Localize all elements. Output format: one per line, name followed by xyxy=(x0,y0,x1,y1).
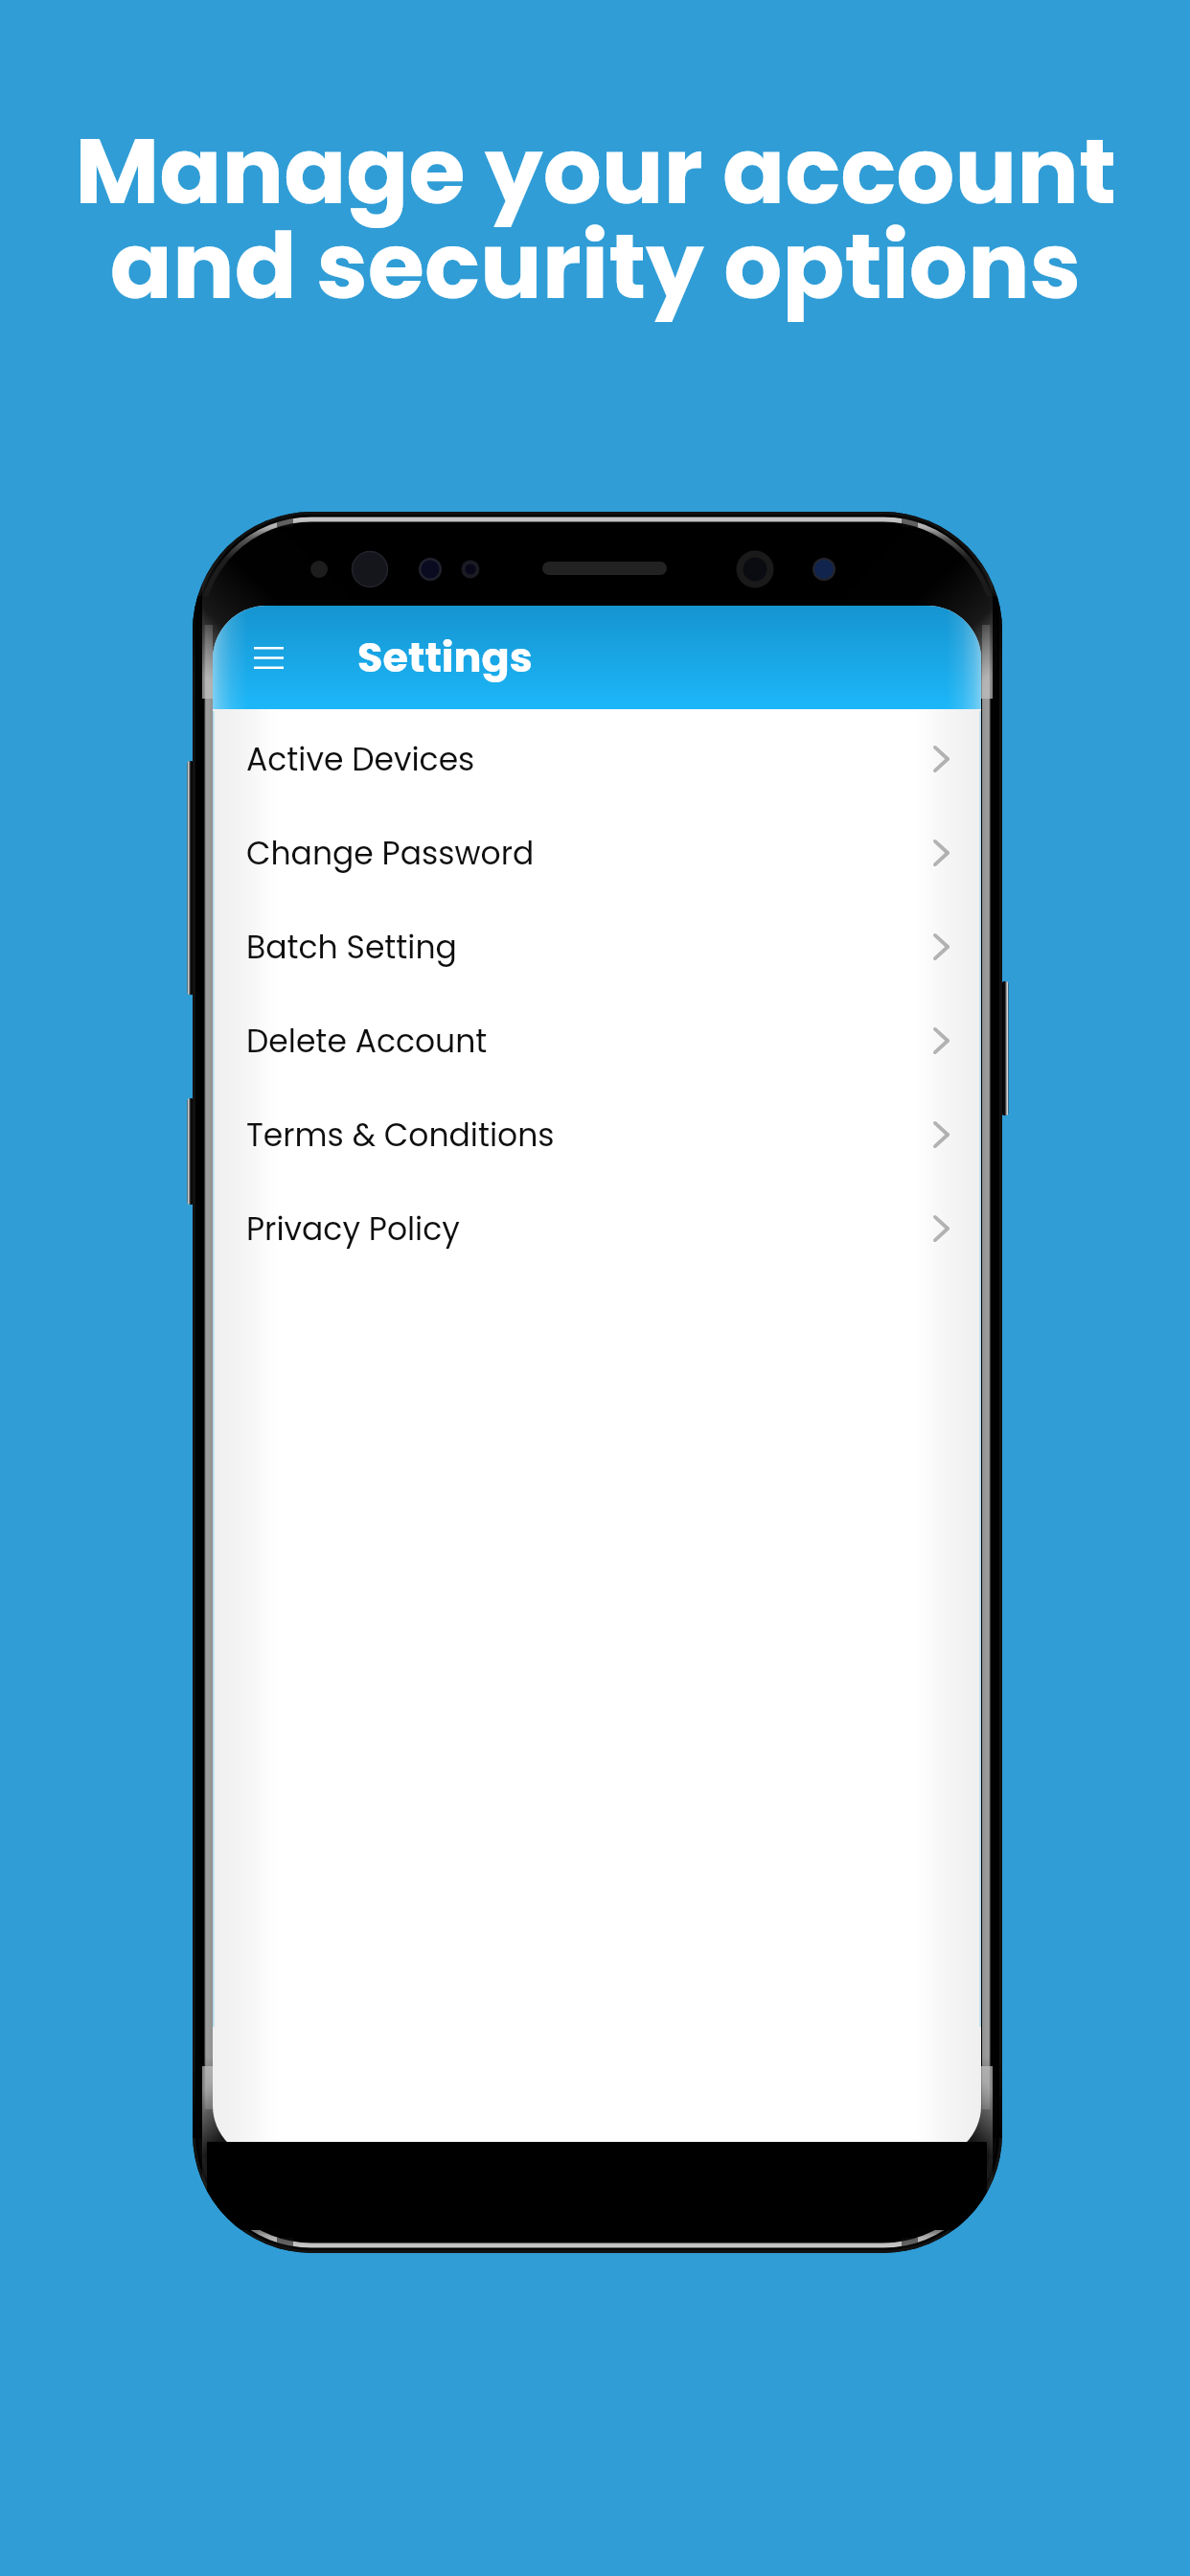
button[interactable]: Active Devices xyxy=(213,712,981,806)
button[interactable]: Open navigation menu xyxy=(240,627,297,688)
button[interactable]: Terms & Conditions xyxy=(213,1088,981,1182)
staticText: Privacy Policy xyxy=(246,1207,460,1251)
staticText: Settings xyxy=(357,629,533,686)
staticText: Delete Account xyxy=(246,1019,488,1063)
staticText: Change Password xyxy=(246,831,535,875)
staticText: Terms & Conditions xyxy=(246,1113,555,1157)
button[interactable]: Change Password xyxy=(213,806,981,900)
button[interactable]: Batch Setting xyxy=(213,900,981,994)
staticText: Manage your account and security options xyxy=(75,106,1116,330)
button[interactable]: Delete Account xyxy=(213,994,981,1088)
button[interactable]: Privacy Policy xyxy=(213,1182,981,1276)
staticText: Batch Setting xyxy=(246,925,457,969)
staticText: Active Devices xyxy=(246,737,475,781)
